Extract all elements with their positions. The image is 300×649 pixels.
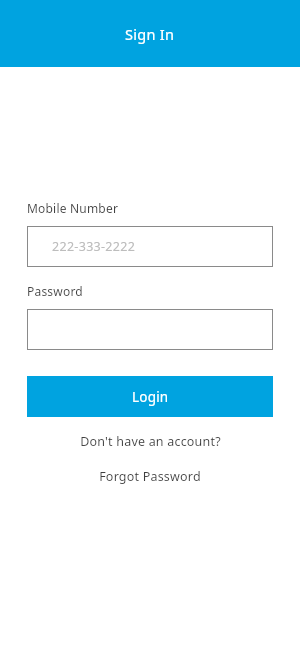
button[interactable]: Don't have an account? [27,428,273,455]
staticText: Mobile Number [27,200,119,216]
staticText: Password [27,283,83,299]
staticText: Login [132,388,169,406]
staticText: Don't have an account? [80,433,221,450]
button[interactable]: Login [27,376,273,417]
staticText: 222-333-2222 [52,238,136,255]
button[interactable] [27,309,273,350]
button[interactable]: 222-333-2222 [27,226,273,267]
button[interactable]: Forgot Password [27,463,273,490]
staticText: Sign In [125,24,175,44]
staticText: Forgot Password [99,468,201,485]
